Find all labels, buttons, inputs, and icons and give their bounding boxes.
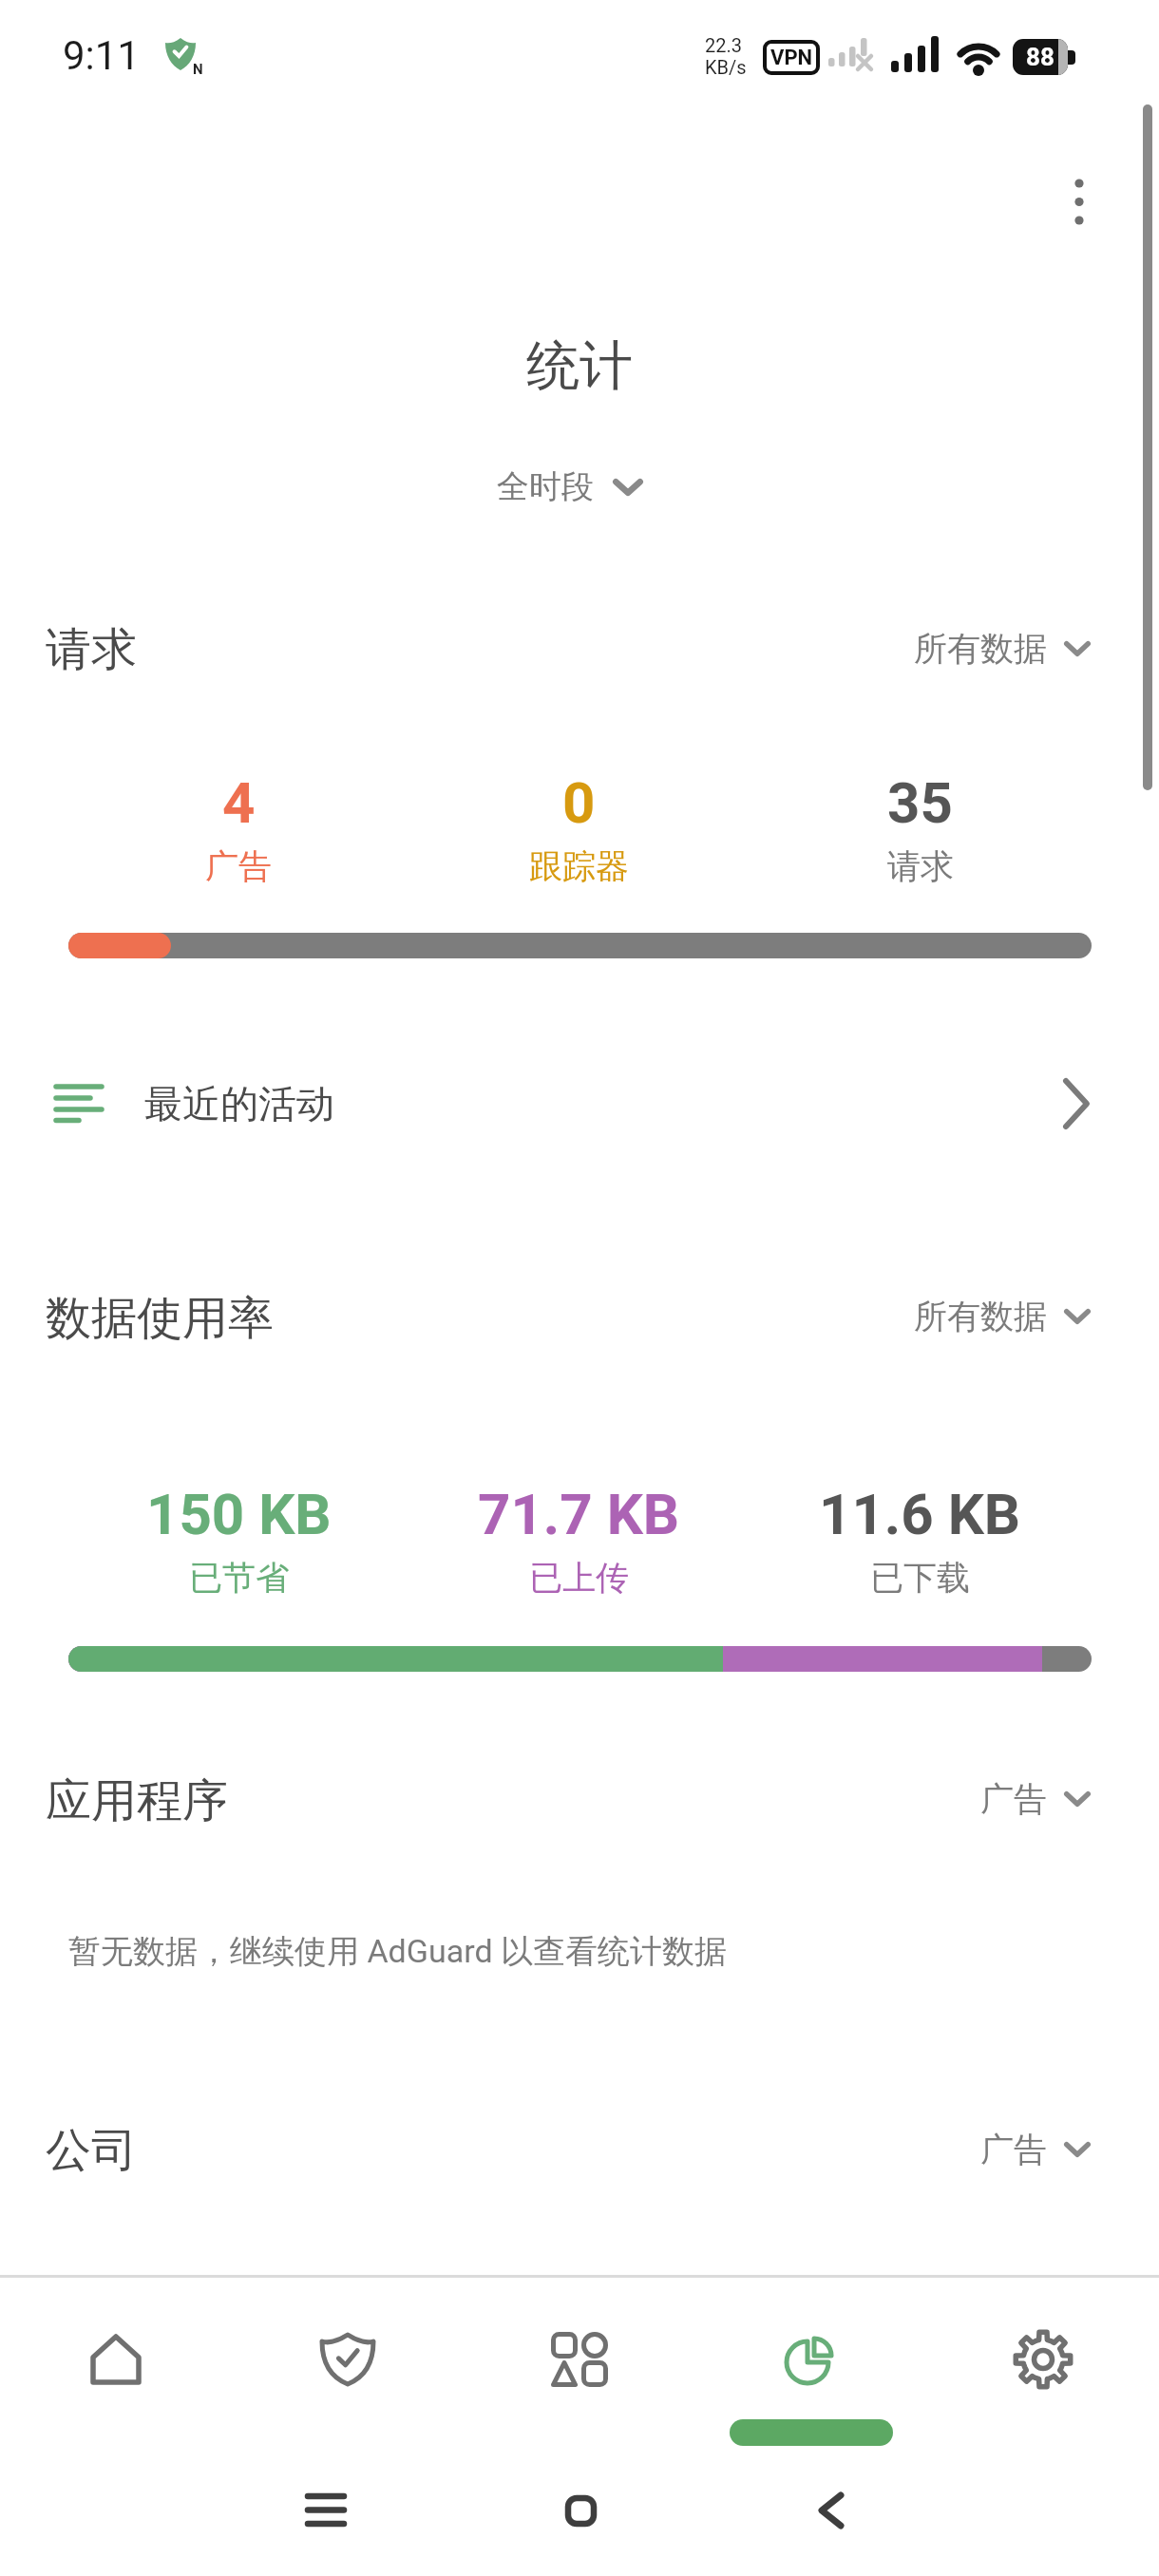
staticText: 所有数据	[914, 628, 1047, 670]
button[interactable]	[0, 2278, 232, 2451]
staticText: 已上传	[529, 1557, 629, 1599]
staticText: 全时段	[497, 466, 594, 507]
button[interactable]: 所有数据	[914, 1296, 1091, 1337]
staticText: 最近的活动	[144, 1080, 334, 1127]
staticText: 已节省	[189, 1557, 289, 1599]
staticText: 广告	[980, 2129, 1047, 2170]
staticText: 35	[887, 769, 953, 836]
staticText: 暂无数据，继续使用 AdGuard 以查看统计数据	[68, 1931, 727, 1972]
staticText: 4	[222, 769, 256, 836]
staticText: 跟踪器	[529, 845, 629, 885]
staticText: KB/s	[705, 56, 747, 78]
staticText: 广告	[205, 845, 272, 885]
button[interactable]	[695, 2278, 927, 2451]
staticText: 请求	[46, 621, 137, 678]
button[interactable]: 所有数据	[914, 628, 1091, 670]
staticText: 数据使用率	[46, 1290, 274, 1347]
staticText: 9:11	[63, 32, 140, 79]
staticText: 71.7 KB	[478, 1481, 680, 1547]
button[interactable]	[523, 2468, 637, 2553]
staticText: 所有数据	[914, 1296, 1047, 1337]
staticText: 150 KB	[146, 1481, 332, 1547]
button[interactable]	[269, 2468, 383, 2553]
staticText: 统计	[526, 332, 633, 400]
staticText: 请求	[887, 845, 954, 885]
button[interactable]	[927, 2278, 1159, 2451]
button[interactable]: 广告	[980, 1778, 1091, 1820]
button[interactable]: 全时段	[497, 466, 643, 507]
staticText: 已下载	[870, 1557, 970, 1599]
staticText: 公司	[46, 2122, 137, 2179]
staticText: 应用程序	[46, 1772, 228, 1829]
button[interactable]	[774, 2468, 888, 2553]
staticText: 广告	[980, 1778, 1047, 1820]
button[interactable]: 最近的活动	[0, 1062, 1159, 1146]
staticText: VPN	[770, 46, 813, 70]
button[interactable]	[464, 2278, 695, 2451]
staticText: 11.6 KB	[819, 1481, 1021, 1547]
staticText: 88	[1026, 43, 1054, 71]
button[interactable]	[232, 2278, 464, 2451]
staticText: 0	[562, 769, 596, 836]
button[interactable]: 广告	[980, 2129, 1091, 2170]
staticText: N	[193, 61, 203, 78]
button[interactable]	[1045, 163, 1113, 255]
staticText: 22.3	[705, 34, 742, 56]
